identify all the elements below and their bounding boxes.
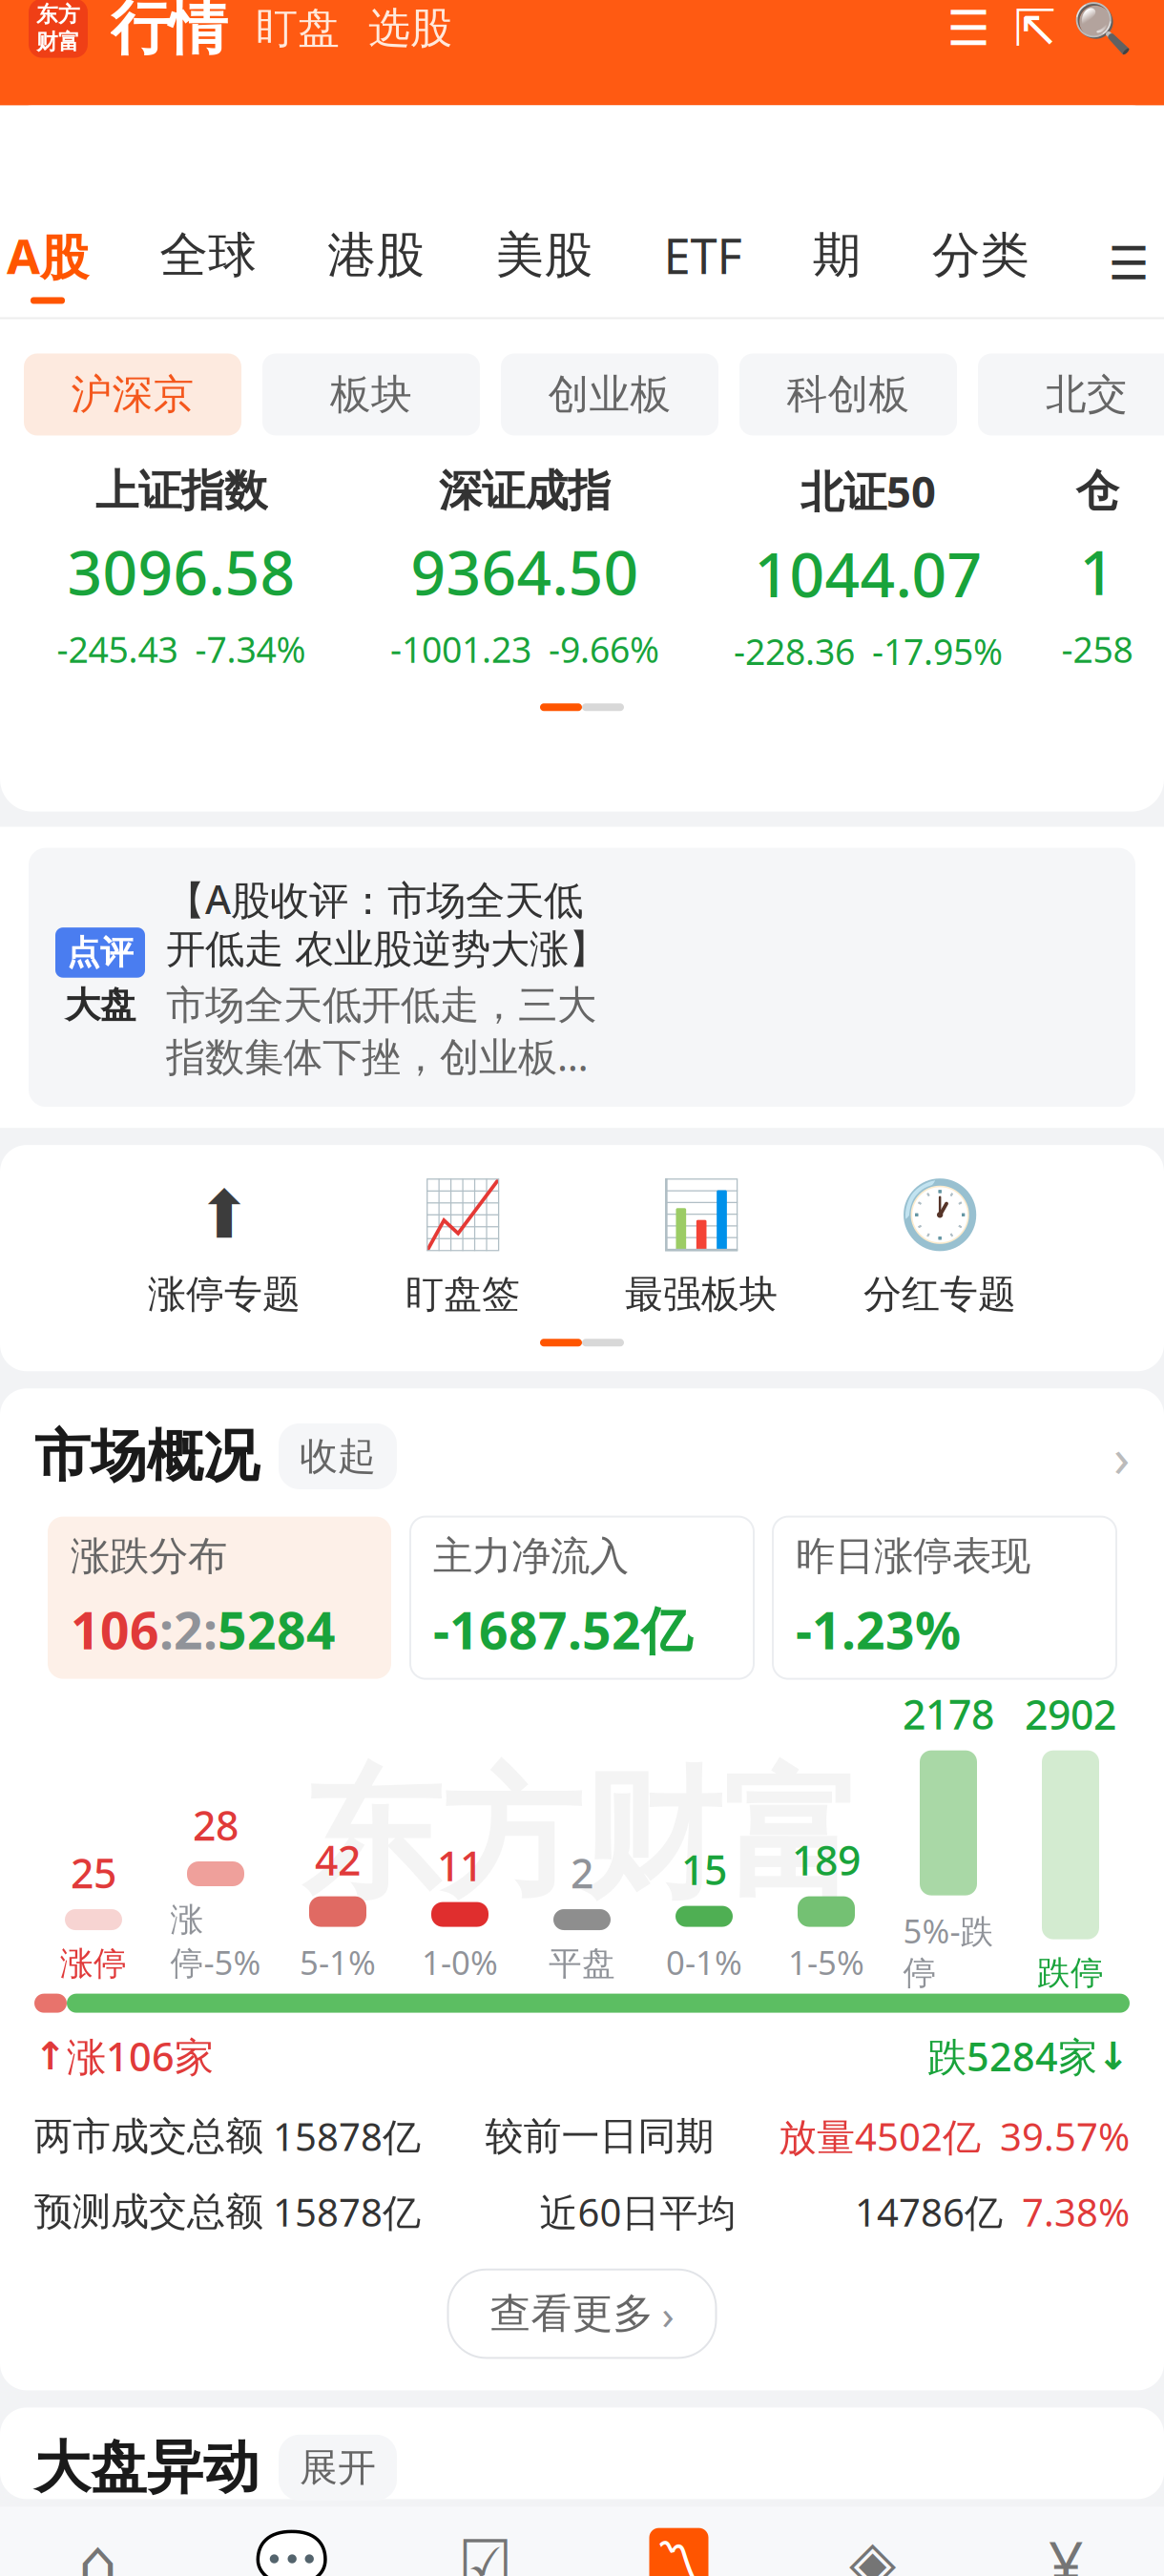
staticText: -258 <box>1061 625 1133 673</box>
staticText: 选股 <box>368 2 452 54</box>
staticText: 大盘异动 <box>34 2433 260 2502</box>
button[interactable]: 🕐 <box>821 1177 1059 1318</box>
button[interactable]: ⌂ <box>1 2528 195 2576</box>
staticText: 市场概况 <box>34 1422 260 1491</box>
button[interactable]: ☑ <box>388 2528 582 2576</box>
staticText: 1044.07 <box>754 533 982 614</box>
staticText: 行情 <box>111 0 227 64</box>
button[interactable]: 板块 <box>262 353 480 436</box>
staticText: › <box>1113 1421 1130 1492</box>
staticText: 15878亿 <box>263 2186 421 2237</box>
button[interactable]: 市场概况 <box>0 1388 1164 1517</box>
staticText: 28 <box>193 1798 239 1852</box>
staticText: 1 <box>1080 531 1115 612</box>
staticText: 分类 <box>932 226 1029 285</box>
button[interactable]: 港股 <box>328 212 425 315</box>
staticText: 收起 <box>300 1433 376 1480</box>
staticText: 期 <box>813 226 861 285</box>
staticText: 展开 <box>300 2444 376 2491</box>
staticText: ¥ <box>1049 2522 1084 2576</box>
staticText: 昨日涨停表现 <box>796 1532 1030 1581</box>
staticText: 北交 <box>1046 370 1128 420</box>
staticText: 📈 <box>422 1177 504 1252</box>
staticText: 15878亿 <box>263 2111 421 2162</box>
button[interactable]: 📈 <box>343 1177 582 1318</box>
button[interactable]: A股 <box>7 210 89 317</box>
staticText: 东方 <box>36 1 80 28</box>
staticText: ETF <box>664 223 742 288</box>
button[interactable]: 分类 <box>932 212 1029 315</box>
staticText: 港股 <box>328 226 425 285</box>
staticText: 25 <box>71 1846 116 1900</box>
staticText: -245.43 <box>57 625 178 673</box>
button[interactable]: 沪深京 <box>24 353 241 436</box>
button[interactable]: Menu <box>935 0 1002 62</box>
staticText: 预测成交总额 <box>34 2188 263 2235</box>
staticText: 东方财富 <box>301 1750 863 1922</box>
staticText: 放量4502亿 <box>779 2111 981 2162</box>
button[interactable]: 〽 <box>582 2528 776 2576</box>
button[interactable]: 全球 <box>159 212 257 315</box>
button[interactable]: 💬 <box>195 2528 388 2576</box>
button[interactable]: ⬆ <box>105 1177 343 1318</box>
button[interactable]: 盯盘 <box>227 2 340 54</box>
staticText: 点评 <box>67 932 134 973</box>
staticText: 跌停 <box>1037 1953 1104 1993</box>
button[interactable]: All categories <box>1100 225 1157 302</box>
staticText: 5%-跌停 <box>903 1909 994 1993</box>
staticText: 42 <box>315 1833 361 1887</box>
staticText: 最强板块 <box>625 1271 778 1318</box>
staticText: -9.66% <box>549 625 659 673</box>
button[interactable]: 北交 <box>978 353 1164 436</box>
button[interactable]: 深证成指 <box>353 464 696 673</box>
staticText: 【A股收评：市场全天低开低走 农业股逆势大涨】 <box>166 873 608 974</box>
staticText: ⬆ <box>197 1177 252 1252</box>
button[interactable]: 东方财富 <box>29 0 88 58</box>
button[interactable]: 创业板 <box>501 353 718 436</box>
button[interactable]: 科创板 <box>739 353 957 436</box>
staticText: ⌂ <box>78 2528 117 2576</box>
button[interactable]: 上证指数 <box>10 464 353 673</box>
button[interactable]: ETF <box>664 210 742 317</box>
staticText: 美股 <box>496 226 593 285</box>
staticText: 查看更多 <box>490 2289 654 2339</box>
staticText: 大盘 <box>65 983 135 1027</box>
button[interactable]: ◈ <box>776 2528 969 2576</box>
staticText: 15 <box>681 1842 727 1896</box>
button[interactable]: 美股 <box>496 212 593 315</box>
staticText: 涨106家 <box>67 2030 214 2082</box>
staticText: 全球 <box>159 226 257 285</box>
staticText: 涨停专题 <box>148 1271 301 1318</box>
staticText: 分红专题 <box>863 1271 1016 1318</box>
button[interactable]: 北证50 <box>696 462 1040 675</box>
staticText: 💬 <box>253 2527 330 2576</box>
staticText: ☰ <box>947 1 990 56</box>
button[interactable]: 📊 <box>582 1177 821 1318</box>
staticText: 涨停-5% <box>170 1900 261 1984</box>
staticText: ☰ <box>1108 238 1149 290</box>
button[interactable]: 点评 <box>29 848 1135 1107</box>
staticText: 5284 <box>218 1596 336 1663</box>
staticText: 🔍 <box>1072 1 1132 56</box>
staticText: 两市成交总额 <box>34 2113 263 2160</box>
staticText: 近60日平均 <box>540 2186 736 2237</box>
staticText: ☑ <box>458 2528 512 2576</box>
staticText: 9364.50 <box>411 531 639 612</box>
button[interactable]: Share <box>1002 0 1069 62</box>
button[interactable]: Search <box>1069 0 1135 62</box>
staticText: 2902 <box>1025 1687 1116 1741</box>
staticText: 🕐 <box>899 1177 981 1252</box>
button[interactable]: ¥ <box>969 2528 1163 2576</box>
staticText: 跌5284家 <box>927 2030 1097 2082</box>
staticText: 2 <box>571 1846 593 1900</box>
button[interactable]: 行情 <box>88 0 227 64</box>
staticText: 深证成指 <box>439 464 611 517</box>
button[interactable]: 查看更多 <box>448 2269 716 2358</box>
staticText: 〽 <box>654 2538 704 2576</box>
staticText: 板块 <box>330 370 412 420</box>
button[interactable]: 选股 <box>340 2 452 54</box>
staticText: 涨停 <box>60 1943 127 1984</box>
staticText: 1-0% <box>422 1940 498 1984</box>
staticText: ⇱ <box>1014 0 1057 57</box>
button[interactable]: 期 <box>813 212 861 315</box>
